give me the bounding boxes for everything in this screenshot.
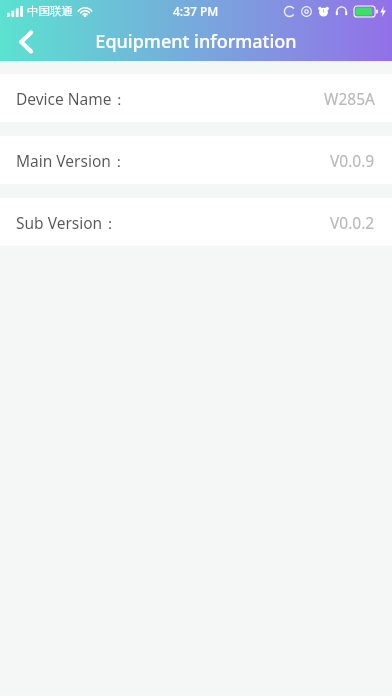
staticText: Device Name： bbox=[16, 88, 128, 109]
staticText: Main Version： bbox=[16, 150, 127, 171]
staticText: V0.0.2 bbox=[330, 212, 375, 233]
button[interactable]: Sub Version： bbox=[0, 198, 392, 246]
button[interactable]: Main Version： bbox=[0, 136, 392, 184]
button[interactable]: Device Name： bbox=[0, 74, 392, 122]
staticText: V0.0.9 bbox=[330, 150, 375, 171]
button[interactable]: Back bbox=[0, 22, 52, 61]
staticText: Sub Version： bbox=[16, 212, 118, 233]
staticText: 4:37 PM bbox=[173, 3, 219, 19]
staticText: Equipment information bbox=[95, 29, 297, 54]
staticText: W285A bbox=[324, 88, 375, 109]
staticText: 中国联通 bbox=[27, 4, 73, 18]
